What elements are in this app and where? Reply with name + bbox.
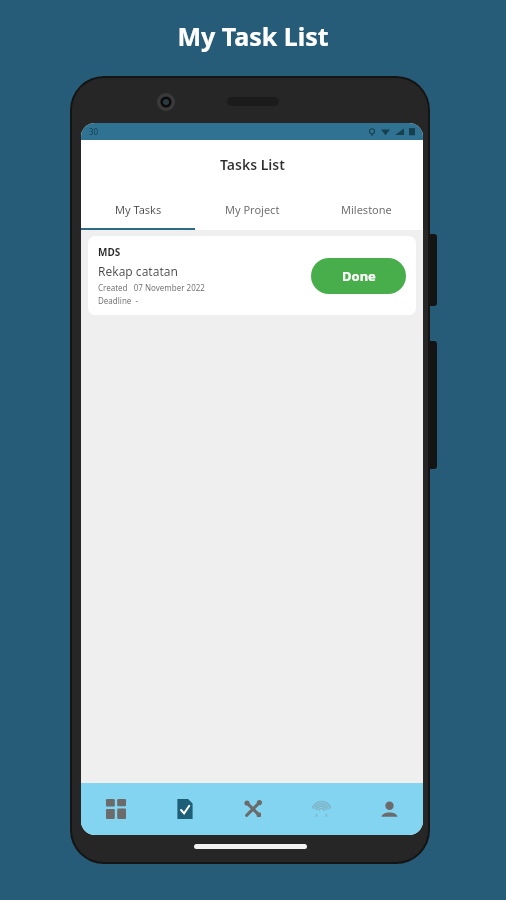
staticText: 30	[89, 126, 99, 137]
staticText: MDS	[98, 245, 121, 259]
button[interactable]: My Project	[195, 188, 309, 230]
staticText: My Project	[225, 202, 280, 217]
button[interactable]: Milestone	[309, 188, 423, 230]
button[interactable]: Done	[311, 258, 406, 294]
button[interactable]: Tasks	[150, 783, 219, 835]
staticText: Created 07 November 2022	[98, 282, 205, 293]
staticText: Deadline -	[98, 295, 139, 306]
staticText: Milestone	[341, 202, 392, 217]
button[interactable]: Tools	[219, 783, 287, 835]
staticText: Rekap catatan	[98, 263, 178, 279]
button[interactable]: Dashboard	[81, 783, 150, 835]
button[interactable]: Attendance	[287, 783, 355, 835]
button[interactable]: My Tasks	[81, 188, 195, 230]
staticText: Tasks List	[220, 155, 285, 174]
button[interactable]: MDS	[88, 236, 416, 315]
staticText: My Tasks	[115, 202, 162, 217]
staticText: Done	[342, 267, 376, 285]
staticText: My Task List	[177, 19, 329, 53]
button[interactable]: Profile	[355, 783, 423, 835]
